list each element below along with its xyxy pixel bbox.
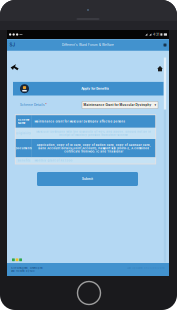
staticText: and Hosted by NIC xyxy=(11,269,35,273)
staticText: Benefits xyxy=(18,159,30,162)
staticText: Maintenance Grant for Muscular Dystrophy xyxy=(83,103,151,107)
button[interactable]: Back xyxy=(10,62,22,74)
staticText: Scheme Details xyxy=(20,103,45,107)
button[interactable]: Submit xyxy=(37,172,138,186)
staticText: Application, Copy of ID Card, Copy of Ra… xyxy=(37,143,151,153)
staticText: Maintenance Grant for Muscular Dystrophy… xyxy=(34,120,124,123)
staticText: SJ xyxy=(9,42,14,48)
staticText: Documents xyxy=(16,147,32,150)
button[interactable]: Maintenance Grant for Muscular Dystrophy xyxy=(82,101,158,109)
staticText: 4:31 xyxy=(153,33,159,36)
staticText: Submit xyxy=(82,177,93,181)
staticText: Muscular Dystrophy with the disability o… xyxy=(36,130,151,137)
staticText: Different's Ward Forum & Welfare xyxy=(62,43,114,47)
staticText: Last Updated on 23/09/2019 xyxy=(127,266,165,269)
staticText: * xyxy=(45,103,47,107)
staticText: Site Designed, Developed xyxy=(11,266,43,269)
staticText: ▾ xyxy=(154,103,156,107)
button[interactable]: Home xyxy=(155,63,165,73)
staticText: Eligibility xyxy=(16,132,31,135)
staticText: Monthly grant of Rs 7,500 xyxy=(34,159,72,162)
staticText: Apply for Benefits xyxy=(81,87,109,91)
staticText: Scheme Name xyxy=(18,118,30,125)
